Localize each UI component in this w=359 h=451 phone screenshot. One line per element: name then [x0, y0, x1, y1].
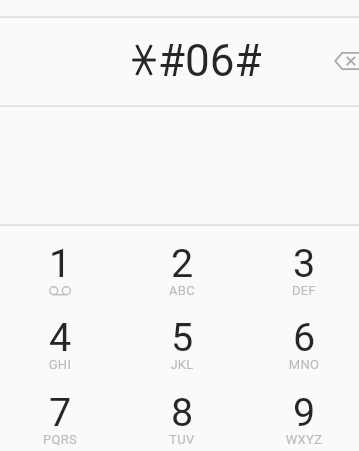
staticText: 4: [0, 314, 120, 360]
staticText: TUV: [122, 432, 242, 447]
staticText: 3: [244, 240, 359, 286]
button[interactable]: 1: [0, 225, 120, 299]
staticText: #06#: [158, 35, 262, 87]
staticText: 9: [244, 389, 359, 435]
staticText: PQRS: [0, 432, 120, 447]
staticText: GHI: [0, 357, 120, 372]
staticText: 6: [244, 314, 359, 360]
staticText: JKL: [122, 357, 242, 372]
staticText: 5: [122, 314, 242, 360]
button[interactable]: 9: [244, 374, 359, 448]
button[interactable]: 4: [0, 299, 120, 373]
staticText: 2: [122, 240, 242, 286]
staticText: 7: [0, 389, 120, 435]
button[interactable]: 5: [122, 299, 242, 373]
staticText: ABC: [122, 283, 242, 298]
button[interactable]: 7: [0, 374, 120, 448]
staticText: WXYZ: [244, 432, 359, 447]
button[interactable]: 2: [122, 225, 242, 299]
staticText: MNO: [244, 357, 359, 372]
staticText: DEF: [244, 283, 359, 298]
button[interactable]: 3: [244, 225, 359, 299]
button[interactable]: 6: [244, 299, 359, 373]
button[interactable]: Backspace: [322, 37, 359, 85]
staticText: 8: [122, 389, 242, 435]
button[interactable]: Dialled number *#06#: [0, 18, 314, 105]
button[interactable]: 8: [122, 374, 242, 448]
staticText: 1: [0, 240, 120, 286]
